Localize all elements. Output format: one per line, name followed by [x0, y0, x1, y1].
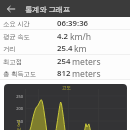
button[interactable]: 거리 — [0, 42, 130, 55]
staticText: 200 — [4, 106, 23, 111]
button[interactable]: 소요 시간 — [0, 17, 130, 30]
staticText: meters — [72, 68, 101, 80]
staticText: km — [74, 43, 87, 55]
button[interactable]: 최고점 — [0, 55, 130, 68]
staticText: meters — [72, 56, 101, 68]
staticText: 총 획득고도 — [3, 69, 37, 78]
staticText: 4.2 — [57, 31, 69, 42]
button[interactable]: 총 획득고도 — [0, 67, 130, 80]
staticText: 06:39:36 — [57, 18, 89, 29]
staticText: 거리 — [3, 45, 16, 53]
staticText: 평균 속도 — [3, 32, 30, 41]
staticText: 812 — [57, 68, 71, 79]
button[interactable]: 평균 속도 — [0, 30, 130, 43]
staticText: 고도 (m) — [16, 120, 22, 130]
staticText: 254 — [57, 56, 71, 67]
staticText: 소요 시간 — [3, 19, 30, 28]
staticText: 통계와 그래프 — [25, 4, 70, 14]
staticText: 150 — [4, 119, 23, 124]
staticText: 25.4 — [57, 43, 73, 54]
staticText: 250 — [4, 94, 23, 99]
staticText: 최고점 — [3, 58, 22, 66]
staticText: km/h — [70, 31, 92, 43]
staticText: 고도 — [62, 85, 71, 91]
button[interactable]: Back — [0, 0, 22, 17]
